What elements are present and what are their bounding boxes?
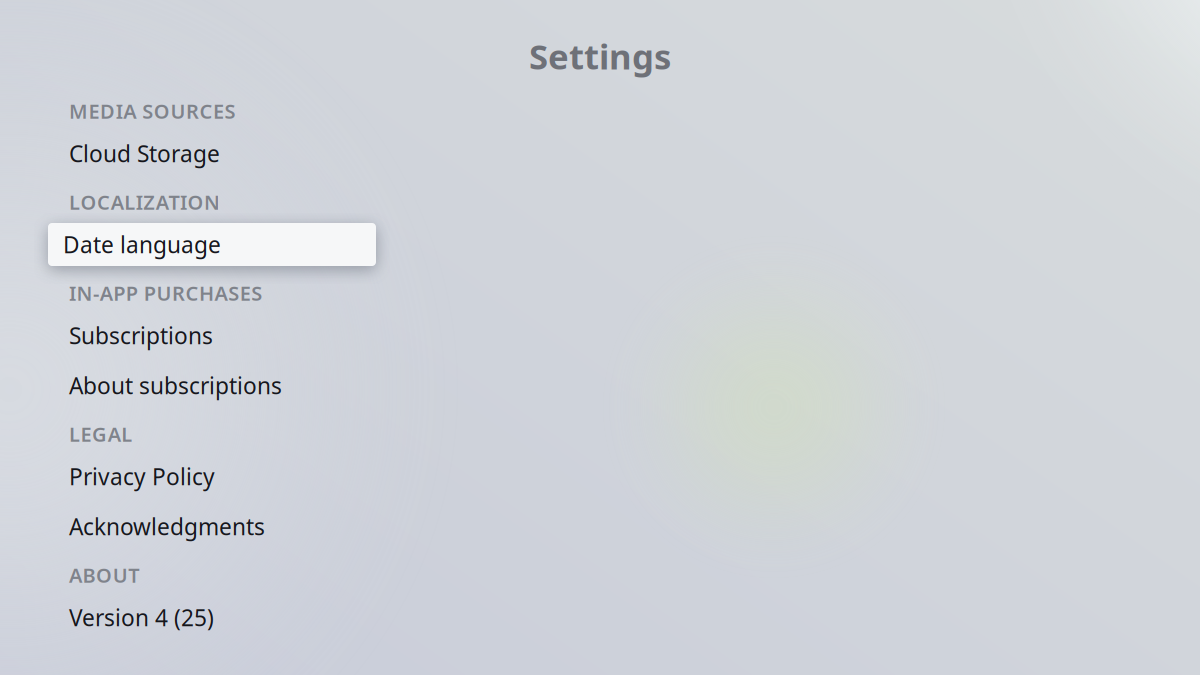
staticText: ABOUT: [69, 562, 139, 588]
button[interactable]: Date language: [0, 219, 520, 269]
staticText: Version 4 (25): [69, 602, 214, 632]
staticText: IN-APP PURCHASES: [69, 280, 262, 306]
staticText: About subscriptions: [69, 370, 282, 400]
staticText: MEDIA SOURCES: [69, 98, 236, 124]
button[interactable]: Privacy Policy: [0, 451, 520, 501]
staticText: Acknowledgments: [69, 511, 265, 541]
staticText: LEGAL: [69, 421, 132, 447]
button[interactable]: About subscriptions: [0, 360, 520, 410]
button[interactable]: Acknowledgments: [0, 501, 520, 551]
staticText: LOCALIZATION: [69, 189, 220, 215]
staticText: Privacy Policy: [69, 461, 215, 491]
staticText: Cloud Storage: [69, 138, 220, 168]
staticText: Date language: [63, 229, 221, 259]
button[interactable]: Subscriptions: [0, 310, 520, 360]
button[interactable]: Cloud Storage: [0, 128, 520, 178]
staticText: Subscriptions: [69, 320, 213, 350]
button[interactable]: Version 4 (25): [0, 592, 520, 642]
staticText: Settings: [529, 33, 671, 79]
